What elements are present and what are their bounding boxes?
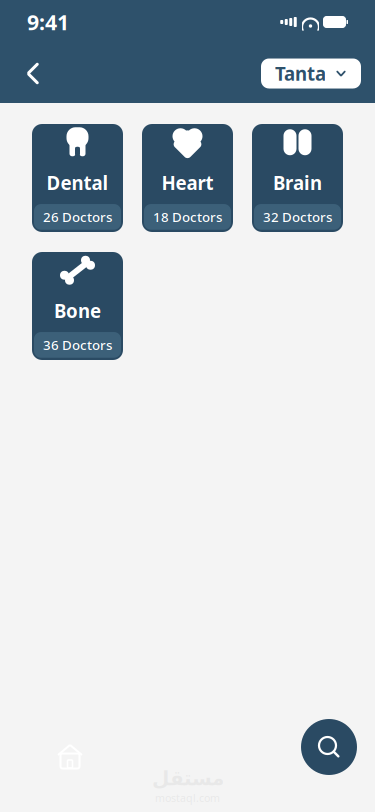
button[interactable]: Search (301, 719, 357, 775)
staticText: 9:41 (27, 8, 69, 36)
staticText: 18 Doctors (153, 208, 222, 226)
button[interactable]: Dental (32, 124, 123, 232)
staticText: 26 Doctors (43, 208, 112, 226)
staticText: mostaql.com (155, 791, 220, 805)
button[interactable]: Heart (142, 124, 233, 232)
button[interactable]: Bone (32, 252, 123, 360)
button[interactable]: Brain (252, 124, 343, 232)
staticText: مستقل (151, 767, 223, 790)
staticText: Heart (161, 170, 213, 195)
button[interactable]: Back (11, 51, 55, 95)
button[interactable]: Tanta (261, 58, 361, 88)
button[interactable]: Home (48, 734, 92, 778)
staticText: Brain (273, 170, 322, 195)
staticText: 32 Doctors (263, 208, 332, 226)
staticText: Dental (46, 170, 108, 195)
staticText: 36 Doctors (43, 336, 112, 354)
staticText: Bone (54, 298, 101, 323)
staticText: Tanta (275, 61, 326, 86)
